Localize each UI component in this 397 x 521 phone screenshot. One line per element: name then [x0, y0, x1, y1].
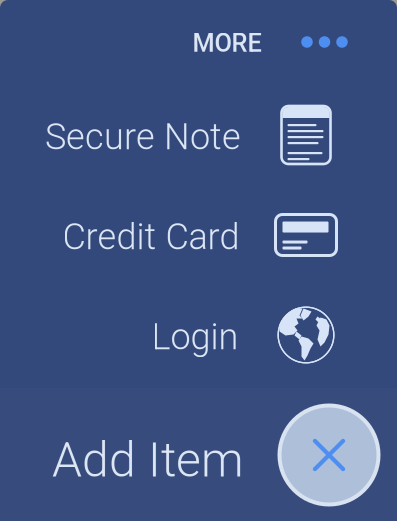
button[interactable]: More options — [298, 28, 350, 56]
button[interactable]: Login — [0, 290, 397, 380]
staticText: Secure Note — [45, 116, 241, 158]
button[interactable]: MORE — [186, 22, 267, 64]
staticText: Login — [151, 316, 238, 358]
staticText: MORE — [192, 28, 261, 58]
button[interactable]: Credit Card — [0, 190, 397, 280]
button[interactable]: Secure Note — [0, 90, 397, 180]
button[interactable]: Close — [277, 403, 380, 506]
staticText: Credit Card — [62, 216, 239, 258]
staticText: Add Item — [52, 432, 244, 488]
